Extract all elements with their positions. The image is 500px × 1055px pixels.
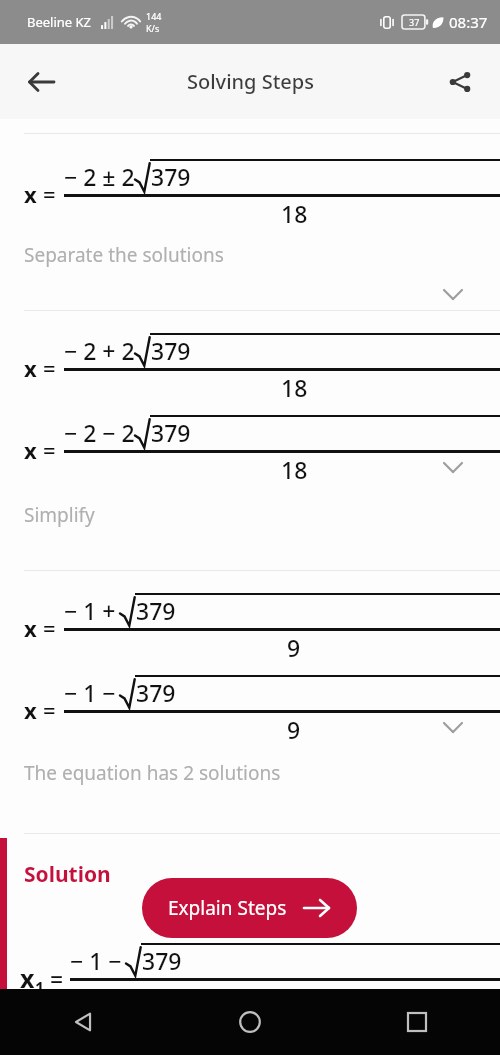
button[interactable]: Share [434,56,486,108]
button[interactable]: Expand step [432,446,474,488]
staticText: Solving Steps [187,68,314,95]
staticText: − 1 − [64,677,116,708]
staticText: x [20,961,35,995]
staticText: x [24,435,37,465]
staticText: 379 [151,161,191,192]
staticText: 9 [287,632,301,663]
staticText: − 2 ± 2 [64,161,135,192]
staticText: The equation has 2 solutions [24,760,281,786]
staticText: K/s [146,22,160,34]
staticText: Explain Steps [168,895,287,921]
staticText: 379 [136,677,176,708]
staticText: x [24,695,37,725]
button[interactable]: Back [0,989,166,1055]
staticText: 37 [409,16,420,28]
button[interactable]: Back [14,55,68,109]
staticText: 379 [142,945,182,976]
staticText: 379 [151,335,191,366]
staticText: 1 [35,977,45,999]
staticText: = [50,963,64,994]
staticText: 18 [281,198,308,229]
button[interactable]: Explain Steps [142,878,357,938]
staticText: Simplify [24,502,95,528]
staticText: = [43,695,56,725]
button[interactable]: Home [166,989,333,1055]
staticText: = [43,179,56,209]
staticText: = [43,353,56,383]
staticText: x [24,353,37,383]
staticText: 08:37 [449,12,488,32]
staticText: Separate the solutions [24,242,224,268]
staticText: 379 [136,595,176,626]
staticText: 18 [281,454,308,485]
staticText: Solution [24,860,111,889]
staticText: = [43,435,56,465]
staticText: − 1 + [64,595,116,626]
button[interactable]: Expand step [432,706,474,748]
staticText: 144 [146,10,162,22]
button[interactable]: Recent apps [333,989,500,1055]
staticText: Beeline KZ [27,13,92,31]
staticText: 379 [151,417,191,448]
staticText: − 2 + 2 [64,335,135,366]
staticText: − 1 − [70,945,122,976]
staticText: − 2 − 2 [64,417,135,448]
staticText: 18 [281,372,308,403]
staticText: x [24,179,37,209]
staticText: 9 [288,982,302,1013]
staticText: x [24,613,37,643]
button[interactable]: Expand step [432,273,474,315]
staticText: = [43,613,56,643]
staticText: 9 [287,714,301,745]
